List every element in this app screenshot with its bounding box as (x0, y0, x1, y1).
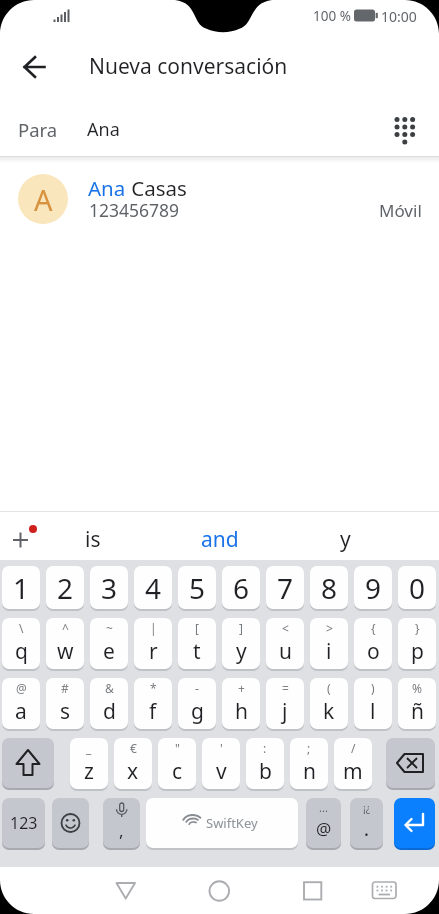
button[interactable]: y (290, 515, 400, 563)
staticText: z (84, 757, 94, 786)
button[interactable]: < (266, 618, 304, 669)
staticText: - (195, 680, 199, 696)
button[interactable]: > (310, 618, 348, 669)
button[interactable]: ~ (90, 618, 128, 669)
button[interactable]: @ (2, 678, 40, 729)
button[interactable]: - (178, 678, 216, 729)
button[interactable] (385, 110, 425, 154)
button[interactable]: _ (70, 738, 108, 789)
button[interactable]: { (354, 618, 392, 669)
button[interactable]: = (266, 678, 304, 729)
button[interactable]: : (246, 738, 284, 789)
button[interactable]: € (114, 738, 152, 789)
button[interactable]: ¡¿ (350, 798, 383, 848)
button[interactable]: and (165, 515, 275, 563)
staticText: Casas (126, 174, 187, 202)
staticText: n (303, 757, 316, 786)
staticText: q (15, 637, 28, 666)
button[interactable]: 3 (90, 566, 128, 609)
button[interactable]: ( (310, 678, 348, 729)
staticText: d (103, 697, 116, 726)
staticText: > (326, 620, 333, 636)
button[interactable]: * (134, 678, 172, 729)
button[interactable] (52, 798, 89, 848)
button[interactable]: 123 (2, 798, 45, 848)
staticText: Móvil (379, 199, 422, 222)
staticText: : (263, 740, 267, 756)
button[interactable]: ' (202, 738, 240, 789)
staticText: 100 % (313, 7, 351, 25)
button[interactable]: ] (222, 618, 260, 669)
staticText: } (415, 620, 420, 636)
staticText: = (282, 680, 289, 696)
staticText: € (130, 740, 137, 756)
staticText: " (175, 740, 180, 756)
button[interactable] (386, 738, 435, 788)
button[interactable]: / (334, 738, 372, 789)
button[interactable]: \ (2, 618, 40, 669)
staticText: . (364, 817, 369, 842)
button[interactable] (2, 738, 54, 788)
staticText: 123 (10, 812, 38, 834)
button[interactable]: ... (306, 798, 341, 848)
staticText: 123456789 (89, 198, 180, 222)
button[interactable] (102, 867, 149, 914)
staticText: 8 (321, 569, 338, 607)
staticText: 7 (277, 569, 294, 607)
button[interactable] (289, 867, 336, 914)
staticText: ; (307, 740, 311, 756)
button[interactable] (2, 512, 58, 560)
staticText: Ana (88, 174, 126, 202)
button[interactable]: " (158, 738, 196, 789)
button[interactable] (196, 867, 243, 914)
staticText: [ (195, 620, 199, 636)
staticText: Nueva conversación (89, 52, 288, 81)
button[interactable] (0, 160, 439, 234)
button[interactable]: ^ (46, 618, 84, 669)
staticText: ' (220, 740, 223, 756)
button[interactable]: ; (290, 738, 328, 789)
button[interactable]: , (103, 798, 140, 848)
button[interactable] (361, 867, 407, 914)
staticText: y (236, 637, 247, 666)
button[interactable]: 0 (398, 566, 436, 609)
staticText: 9 (365, 569, 382, 607)
button[interactable]: 9 (354, 566, 392, 609)
button[interactable]: | (134, 618, 172, 669)
button[interactable]: 7 (266, 566, 304, 609)
staticText: ... (319, 800, 328, 815)
button[interactable]: & (90, 678, 128, 729)
button[interactable]: 8 (310, 566, 348, 609)
staticText: l (370, 697, 376, 726)
staticText: A (34, 180, 53, 219)
button[interactable]: 6 (222, 566, 260, 609)
staticText: and (201, 525, 239, 554)
staticText: e (103, 637, 115, 666)
button[interactable]: 5 (178, 566, 216, 609)
button[interactable]: ) (354, 678, 392, 729)
button[interactable]: } (398, 618, 436, 669)
button[interactable]: 2 (46, 566, 84, 609)
staticText: g (191, 697, 204, 726)
button[interactable]: % (398, 678, 436, 729)
staticText: x (127, 757, 139, 786)
staticText: ¡¿ (363, 801, 371, 815)
button[interactable]: SwiftKey (146, 798, 298, 848)
staticText: 1 (13, 569, 30, 607)
button[interactable]: 1 (2, 566, 40, 609)
staticText: \ (19, 620, 24, 636)
staticText: o (367, 637, 380, 666)
button[interactable] (394, 798, 435, 848)
staticText: Para (18, 117, 58, 142)
button[interactable]: 4 (134, 566, 172, 609)
button[interactable] (14, 46, 58, 90)
staticText: p (411, 637, 424, 666)
button[interactable]: [ (178, 618, 216, 669)
button[interactable]: + (222, 678, 260, 729)
staticText: 3 (101, 569, 118, 607)
button[interactable]: is (40, 515, 145, 563)
staticText: y (340, 525, 351, 554)
staticText: SwiftKey (206, 814, 258, 832)
staticText: k (323, 697, 335, 726)
button[interactable]: # (46, 678, 84, 729)
